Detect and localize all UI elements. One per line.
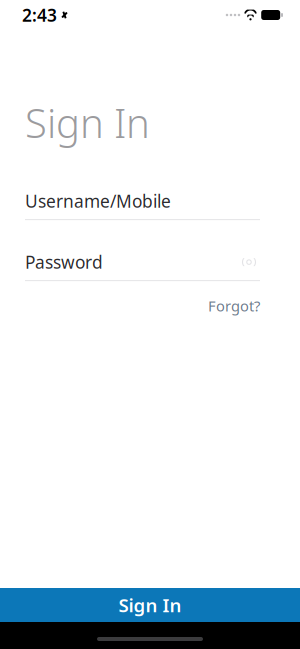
- button[interactable]: Show password: [238, 253, 260, 271]
- button[interactable]: Forgot?: [198, 292, 260, 320]
- staticText: Sign In: [118, 593, 181, 617]
- staticText: Sign In: [25, 96, 150, 149]
- button[interactable]: Sign In: [0, 588, 300, 622]
- staticText: Password: [25, 251, 103, 274]
- staticText: 2:43: [22, 3, 57, 26]
- staticText: Username/Mobile: [25, 190, 171, 213]
- staticText: Forgot?: [208, 296, 260, 316]
